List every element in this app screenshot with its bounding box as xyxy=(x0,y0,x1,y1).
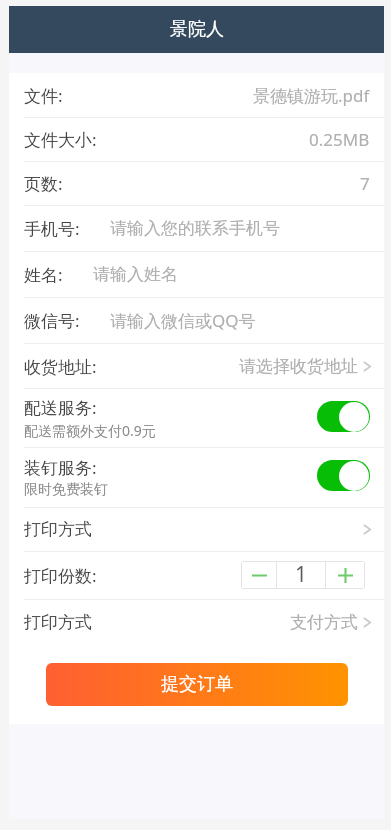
button[interactable]: Increase count xyxy=(326,562,364,588)
button[interactable]: 装钉服务: xyxy=(9,448,384,507)
staticText: 打印方式 xyxy=(24,612,92,633)
button[interactable]: 景院人 xyxy=(9,6,384,53)
button[interactable]: 文件大小: xyxy=(9,118,384,161)
staticText: 微信号: xyxy=(24,309,80,332)
button[interactable]: 文件: xyxy=(9,73,384,117)
button[interactable]: 微信号: xyxy=(9,298,384,343)
staticText: 配送服务: xyxy=(24,396,97,419)
button[interactable]: 提交订单 xyxy=(46,663,348,706)
staticText: 0.25MB xyxy=(309,128,370,151)
button[interactable]: 页数: xyxy=(9,162,384,205)
staticText: 请输入微信或QQ号 xyxy=(110,309,256,332)
staticText: 配送需额外支付0.9元 xyxy=(24,421,156,440)
staticText: 姓名: xyxy=(24,263,63,286)
staticText: 打印份数: xyxy=(24,564,97,587)
button[interactable]: 收货地址: xyxy=(9,344,384,388)
button[interactable]: Decrease count xyxy=(242,562,276,588)
staticText: 景德镇游玩.pdf xyxy=(253,84,370,107)
staticText: 景院人 xyxy=(170,18,224,41)
staticText: 装钉服务: xyxy=(24,456,97,479)
staticText: 收货地址: xyxy=(24,355,97,378)
button[interactable]: 配送服务: xyxy=(9,389,384,447)
staticText: 支付方式 xyxy=(290,612,358,633)
button[interactable]: 手机号: xyxy=(9,206,384,251)
button[interactable]: 姓名: xyxy=(9,252,384,297)
staticText: 提交订单 xyxy=(161,673,233,696)
staticText: 7 xyxy=(360,172,370,195)
staticText: 请输入姓名 xyxy=(93,264,178,285)
staticText: 页数: xyxy=(24,172,63,195)
staticText: 文件: xyxy=(24,84,63,107)
button[interactable]: Toggle 配送服务: xyxy=(317,401,370,432)
staticText: 1 xyxy=(295,561,308,586)
button[interactable]: 打印方式 xyxy=(9,600,384,644)
staticText: 限时免费装钉 xyxy=(24,481,108,499)
staticText: 打印方式 xyxy=(24,519,92,540)
button[interactable]: 打印方式 xyxy=(9,508,384,551)
staticText: 请输入您的联系手机号 xyxy=(110,218,280,239)
staticText: 手机号: xyxy=(24,217,80,240)
button[interactable]: Toggle 装钉服务: xyxy=(317,460,370,491)
staticText: 请选择收货地址 xyxy=(239,356,358,377)
staticText: 文件大小: xyxy=(24,128,97,151)
